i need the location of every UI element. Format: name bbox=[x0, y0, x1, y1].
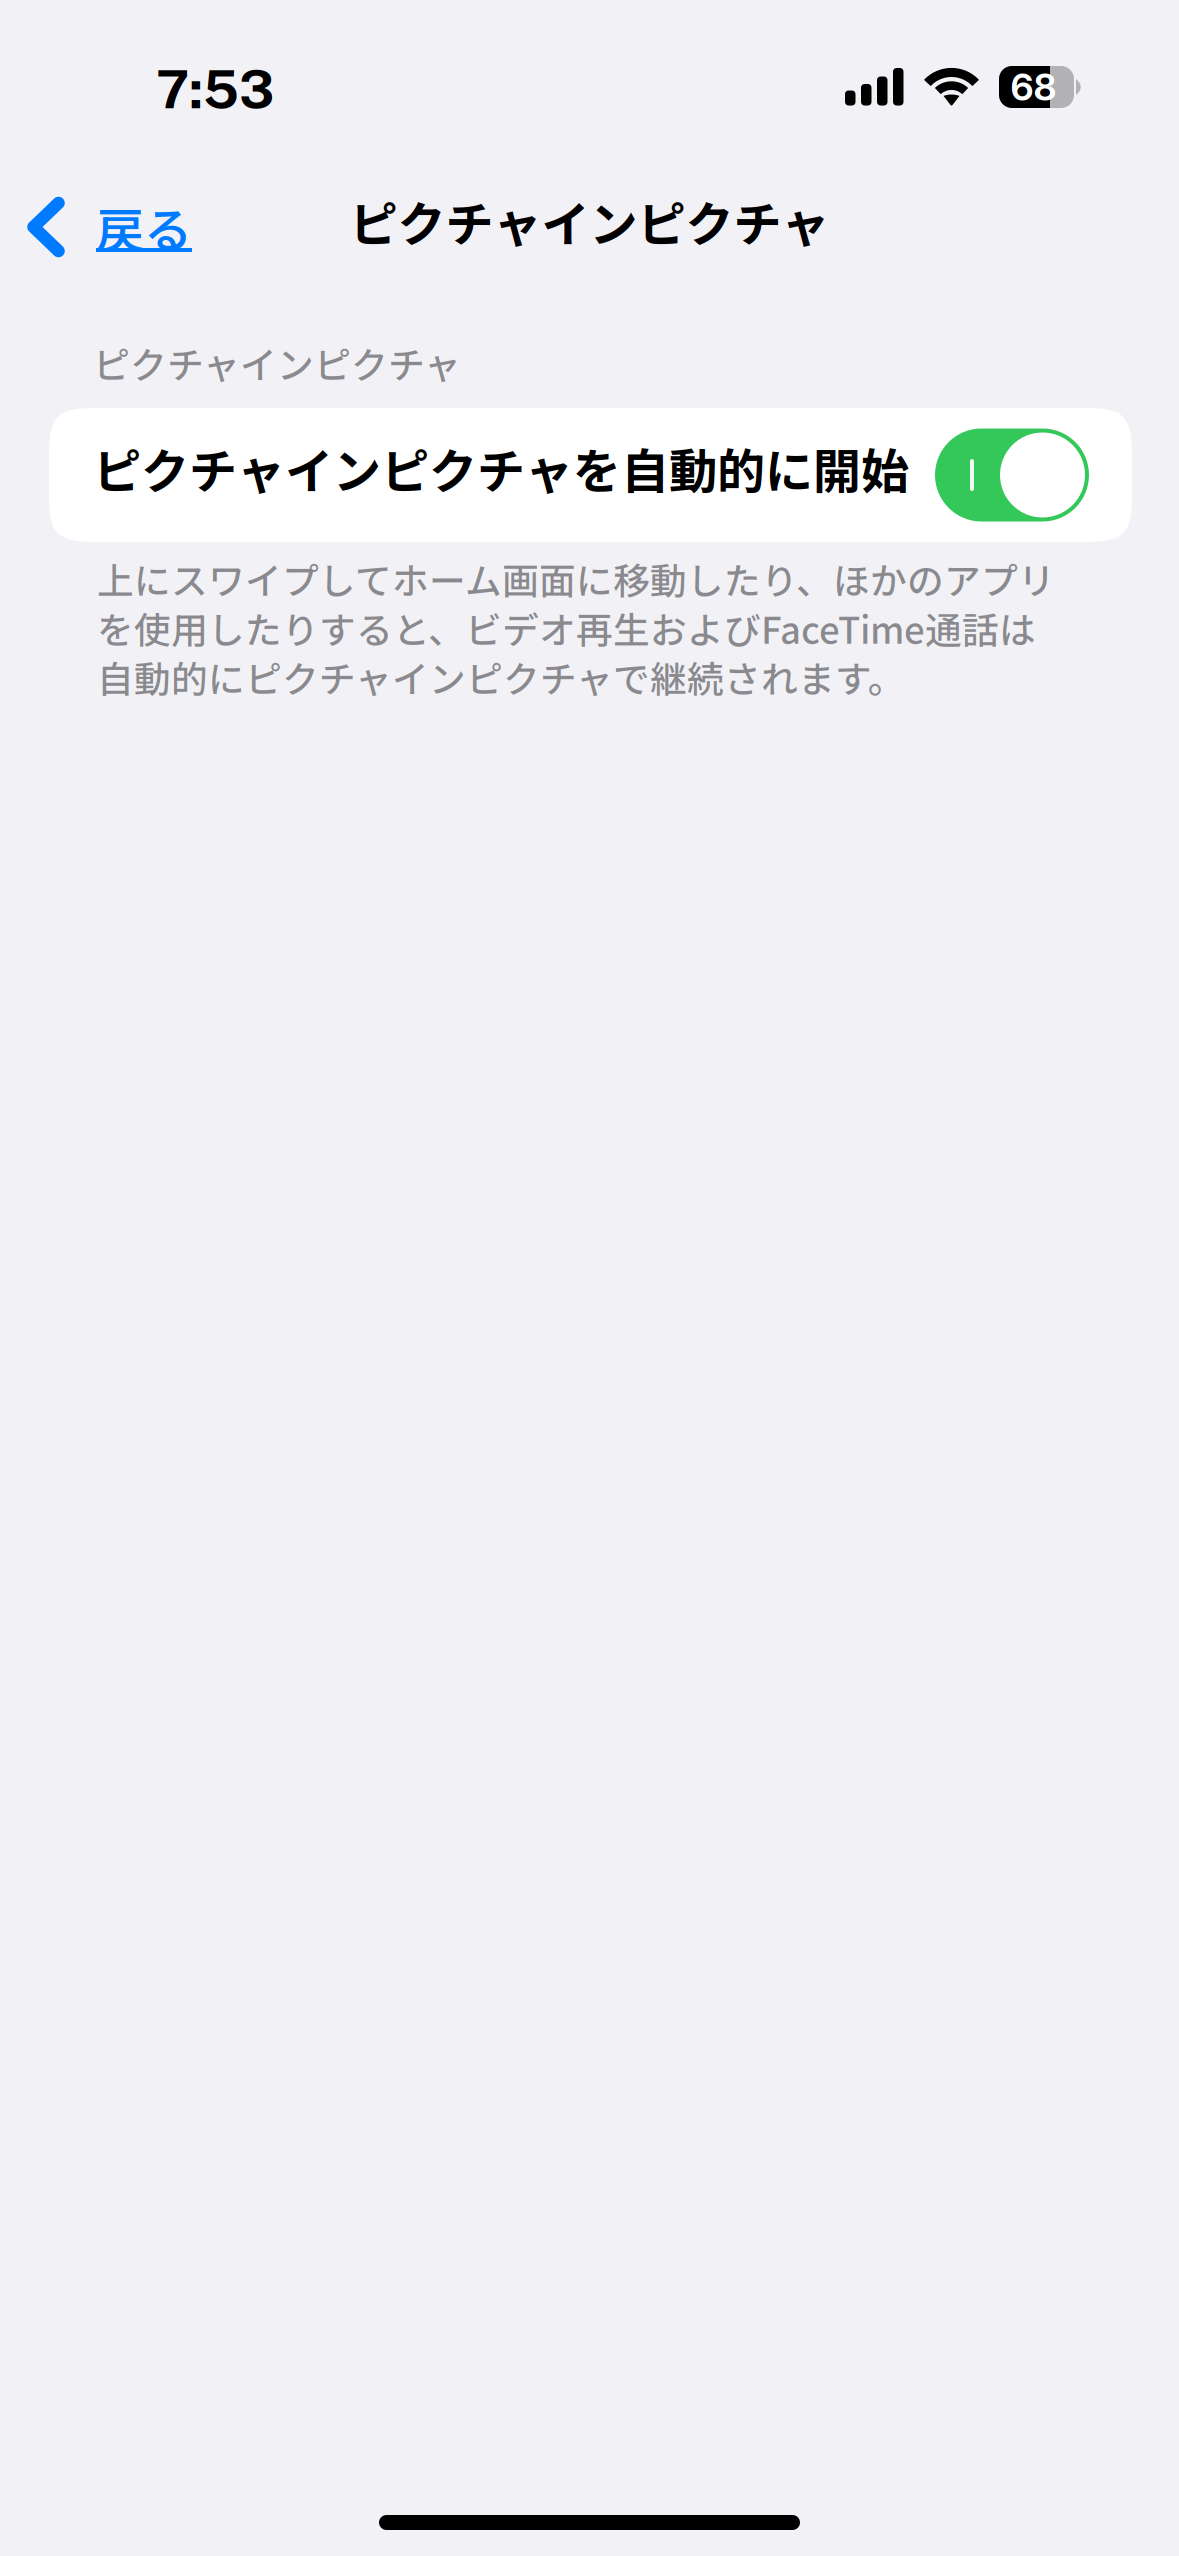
staticText: 戻る bbox=[96, 192, 192, 262]
button[interactable]: 戻る bbox=[0, 181, 216, 273]
staticText: 自動的にピクチャインピクチャで継続されます。 bbox=[97, 650, 905, 703]
button[interactable]: ピクチャインピクチャを自動的に開始 bbox=[49, 408, 1132, 542]
staticText: 68 bbox=[1010, 64, 1056, 110]
staticText: ピクチャインピクチャ bbox=[93, 336, 461, 389]
staticText: 7:53 bbox=[156, 58, 274, 120]
staticText: ピクチャインピクチャを自動的に開始 bbox=[93, 433, 909, 503]
staticText: 上にスワイプしてホーム画面に移動したり、ほかのアプリ bbox=[97, 552, 1055, 605]
staticText: ピクチャインピクチャ bbox=[349, 186, 829, 256]
staticText: を使用したりすると、ビデオ再生およびFaceTime通話は bbox=[97, 601, 1036, 654]
